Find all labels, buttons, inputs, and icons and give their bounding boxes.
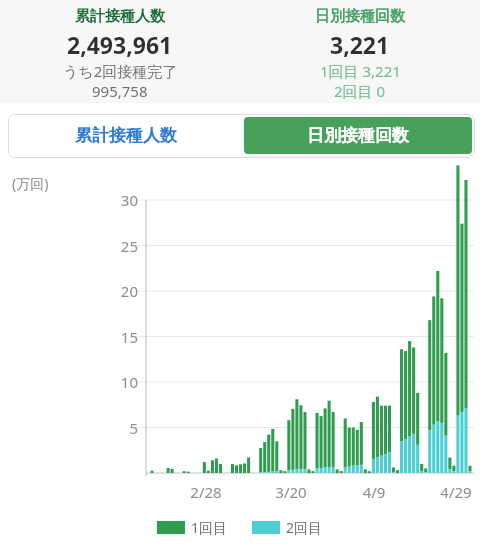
staticText: 日別接種回数 [315, 7, 405, 26]
staticText: 1回目 3,221 [320, 61, 401, 81]
staticText: 3/20 [265, 482, 317, 502]
staticText: 3,221 [330, 29, 390, 60]
staticText: 2回目 0 [334, 81, 386, 101]
button[interactable]: 累計接種人数 [8, 114, 244, 156]
staticText: (万回) [12, 174, 49, 193]
staticText: 1回目 [191, 518, 228, 537]
staticText: 2,493,961 [67, 29, 173, 60]
staticText: 日別接種回数 [307, 125, 409, 146]
staticText: 995,758 [92, 81, 148, 101]
staticText: 累計接種人数 [75, 125, 177, 146]
staticText: 2/28 [180, 482, 232, 502]
button[interactable]: 日別接種回数 [244, 117, 472, 154]
staticText: 20 [106, 281, 138, 301]
staticText: 25 [106, 236, 138, 256]
staticText: 10 [106, 372, 138, 392]
staticText: 30 [106, 190, 138, 210]
staticText: 15 [106, 327, 138, 347]
staticText: 2回目 [286, 518, 323, 537]
staticText: うち2回接種完了 [63, 61, 178, 81]
staticText: 5 [106, 418, 138, 438]
staticText: 4/9 [348, 482, 400, 502]
staticText: 4/29 [430, 482, 480, 502]
staticText: 累計接種人数 [75, 7, 165, 26]
